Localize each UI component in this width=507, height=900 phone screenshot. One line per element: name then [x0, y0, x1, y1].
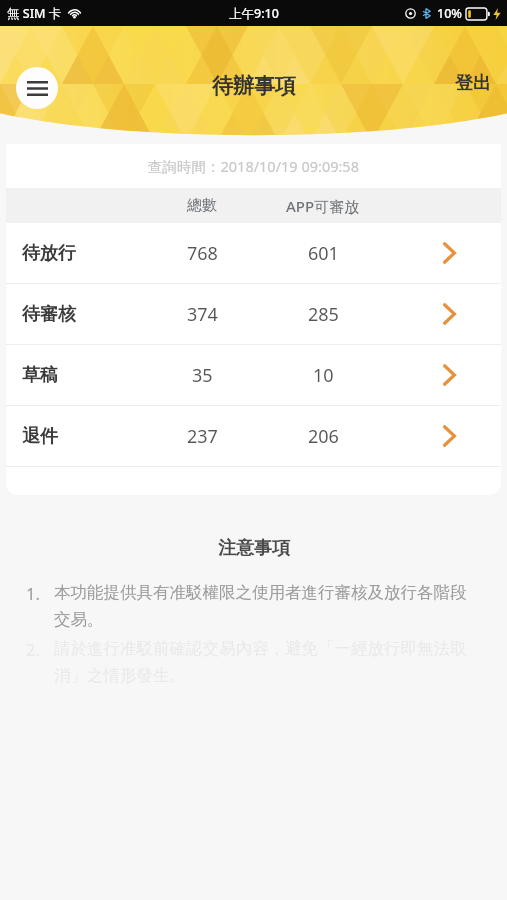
button[interactable]: Menu: [16, 67, 58, 109]
staticText: 登出: [455, 72, 491, 95]
staticText: 285: [308, 302, 339, 327]
staticText: 601: [308, 241, 339, 266]
staticText: 待放行: [22, 242, 76, 265]
button[interactable]: 登出: [439, 62, 507, 105]
staticText: 無 SIM 卡: [7, 5, 62, 22]
staticText: 237: [187, 424, 218, 449]
button[interactable]: 待放行: [6, 223, 501, 283]
staticText: 查詢時間：2018/10/19 09:09:58: [148, 156, 359, 176]
staticText: 待辦事項: [212, 73, 296, 99]
button[interactable]: 草稿: [6, 345, 501, 405]
staticText: 退件: [22, 425, 58, 448]
staticText: 2.: [26, 638, 54, 660]
staticText: 768: [187, 241, 218, 266]
button[interactable]: 待審核: [6, 284, 501, 344]
staticText: 注意事項: [218, 537, 290, 560]
button[interactable]: 退件: [6, 406, 501, 466]
staticText: 請於進行准駁前確認交易內容，避免「一經放行即無法取消」之情形發生。: [54, 638, 473, 686]
staticText: 374: [187, 302, 218, 327]
staticText: 待審核: [22, 303, 76, 326]
staticText: 1.: [26, 582, 54, 604]
staticText: 本功能提供具有准駁權限之使用者進行審核及放行各階段交易。: [54, 582, 473, 630]
staticText: 10%: [437, 5, 462, 22]
staticText: 總數: [187, 196, 217, 215]
staticText: 上午9:10: [229, 5, 279, 22]
staticText: 35: [192, 363, 213, 388]
staticText: APP可審放: [286, 196, 360, 216]
staticText: 10: [313, 363, 334, 388]
staticText: 草稿: [22, 364, 58, 387]
staticText: 206: [308, 424, 339, 449]
